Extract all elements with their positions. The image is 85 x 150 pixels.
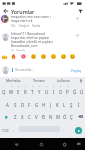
button[interactable]: Paylaş: [70, 66, 83, 74]
button[interactable]: Backspace: [75, 110, 85, 123]
staticText: maya elarl urk: [11, 19, 33, 23]
button[interactable]: İ: [75, 97, 82, 110]
button[interactable]: Ç: [68, 110, 75, 123]
button[interactable]: Home: [36, 138, 47, 150]
button[interactable]: Comma: [10, 123, 18, 138]
button[interactable]: V: [33, 110, 40, 123]
button[interactable]: 1: [0, 84, 8, 97]
button[interactable]: React with emoji: [29, 51, 37, 62]
staticText: 5: [32, 85, 34, 88]
button[interactable]: M: [54, 110, 61, 123]
button[interactable]: meposkoi cmo ono crano i: [0, 15, 85, 28]
button[interactable]: Z: [11, 110, 19, 123]
staticText: Yorumlar: [11, 8, 35, 15]
staticText: C: [28, 114, 31, 120]
staticText: 6: [39, 85, 41, 88]
button[interactable]: J: [47, 97, 54, 110]
button[interactable]: A: [3, 97, 11, 110]
button[interactable]: React with emoji: [9, 51, 17, 62]
staticText: ?123: [2, 129, 9, 133]
staticText: 0: [67, 85, 69, 88]
staticText: W: [9, 89, 14, 95]
button[interactable]: Symbols: [0, 123, 10, 138]
staticText: Ş: [70, 102, 73, 108]
staticText: 7: [46, 85, 48, 88]
button[interactable]: K: [54, 97, 61, 110]
button[interactable]: Merhaba: [0, 77, 26, 84]
staticText: Bonuahoodt_com: [11, 44, 38, 48]
button[interactable]: D: [19, 97, 26, 110]
button[interactable]: N: [47, 110, 54, 123]
button[interactable]: React with emoji: [59, 51, 67, 62]
button[interactable]: 7: [43, 84, 50, 97]
button[interactable]: React with emoji: [19, 51, 27, 62]
button[interactable]: 5: [29, 84, 36, 97]
button[interactable]: G: [33, 97, 40, 110]
staticText: U: [45, 89, 49, 95]
button[interactable]: Ş: [68, 97, 75, 110]
button[interactable]: Hide keyboard: [11, 138, 22, 150]
staticText: X: [21, 114, 24, 120]
staticText: K: [56, 102, 59, 108]
button[interactable]: Tamam: [26, 77, 51, 84]
button[interactable]: Switch keyboard: [74, 138, 83, 150]
button[interactable]: Recent apps: [59, 138, 70, 150]
staticText: Ö: [63, 114, 67, 120]
button[interactable]: React with emoji: [49, 51, 57, 62]
staticText: Y: [38, 89, 41, 95]
button[interactable]: hilozat111 Bonuahood: [0, 32, 85, 51]
staticText: kullanıcı: [57, 78, 71, 83]
button[interactable]: 9: [57, 84, 64, 97]
staticText: A: [6, 102, 9, 108]
button[interactable]: 4: [22, 84, 29, 97]
staticText: Paylaş: [71, 68, 82, 72]
staticText: Ü: [80, 89, 84, 95]
staticText: hilozat111 Bonuahood: [11, 32, 45, 36]
staticText: P: [66, 89, 69, 95]
button[interactable]: Back: [0, 7, 11, 15]
staticText: hazardlar, etkinlik ve paylasi: [11, 40, 53, 44]
button[interactable]: F: [26, 97, 33, 110]
button[interactable]: React with emoji: [39, 51, 47, 62]
button[interactable]: Send: [71, 123, 85, 138]
button[interactable]: Ğ: [71, 84, 78, 97]
staticText: Tamam: [33, 78, 45, 83]
button[interactable]: Ö: [61, 110, 68, 123]
staticText: B: [42, 114, 45, 120]
staticText: 9: [60, 85, 62, 88]
staticText: O: [59, 89, 63, 95]
button[interactable]: Voice input: [76, 77, 85, 84]
button[interactable]: 3: [15, 84, 22, 97]
staticText: meposkoi cmo ono crano i: [11, 15, 51, 19]
button[interactable]: 8: [50, 84, 57, 97]
staticText: 4: [25, 85, 27, 88]
button[interactable]: React with emoji: [0, 51, 8, 62]
button[interactable]: H: [40, 97, 47, 110]
button[interactable]: React with emoji: [68, 51, 76, 62]
staticText: Z: [14, 114, 17, 120]
button[interactable]: Shift: [0, 110, 11, 123]
button[interactable]: Filter: [75, 7, 85, 15]
button[interactable]: Like: [71, 32, 84, 39]
staticText: .: [63, 127, 65, 132]
staticText: İ: [78, 102, 80, 108]
button[interactable]: X: [19, 110, 26, 123]
staticText: E: [17, 89, 20, 95]
button[interactable]: C: [26, 110, 33, 123]
button[interactable]: 0: [64, 84, 71, 97]
button[interactable]: B: [40, 110, 47, 123]
staticText: L: [63, 102, 66, 108]
staticText: H: [42, 102, 46, 108]
button[interactable]: kullanıcı: [51, 77, 76, 84]
staticText: Q: [2, 89, 6, 95]
staticText: kopurzlar, etkili ve paylasi: [11, 36, 49, 40]
button[interactable]: 2: [8, 84, 15, 97]
button[interactable]: Ü: [78, 84, 85, 97]
button[interactable]: S: [11, 97, 19, 110]
button[interactable]: Like: [71, 15, 84, 22]
staticText: 2: [11, 85, 13, 88]
button[interactable]: L: [61, 97, 68, 110]
button[interactable]: 6: [36, 84, 43, 97]
